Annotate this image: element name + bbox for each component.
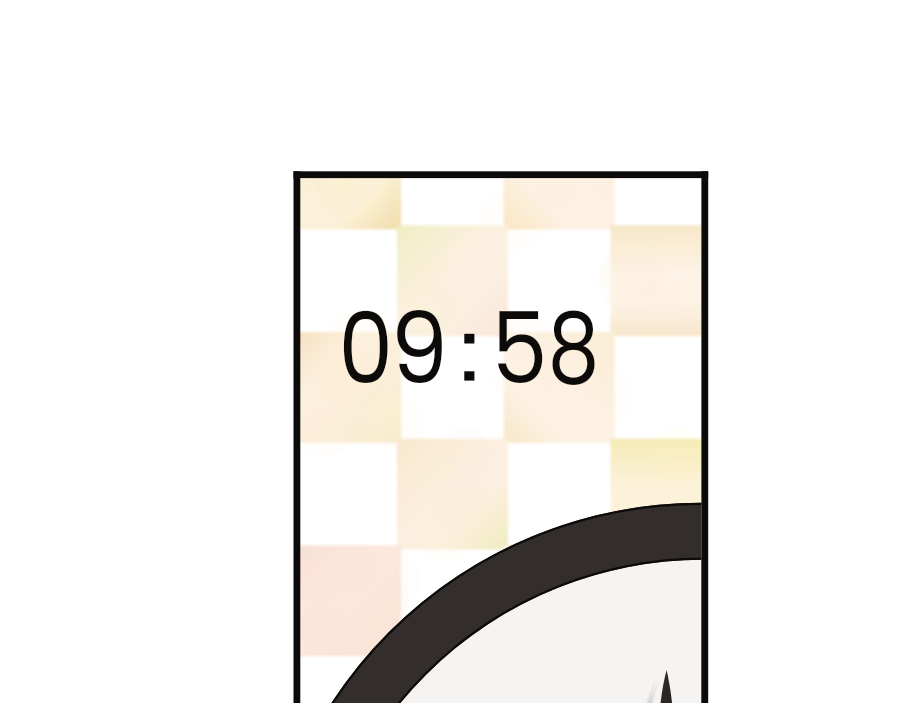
button[interactable]: Comic panel: clock showing 09:58: [0, 0, 900, 703]
